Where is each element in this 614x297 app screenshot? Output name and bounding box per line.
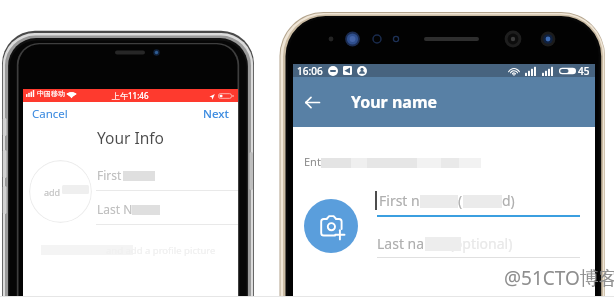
staticText: Your name [351,91,438,113]
button[interactable]: Next [194,103,238,123]
staticText: First n [379,191,420,210]
button[interactable]: Add photo [29,160,92,223]
button[interactable]: Cancel [23,103,77,123]
staticText: 16:06 [297,64,323,77]
staticText: d) [502,191,515,210]
button[interactable]: Back [297,87,327,117]
staticText: Last na [377,234,425,253]
staticText: First [97,167,122,183]
staticText: and add a profile picture [106,244,216,256]
staticText: @51CTO博客 [504,265,614,291]
staticText: Next [203,106,229,120]
staticText: 中国移动 [37,89,65,98]
staticText: 45 [578,64,590,77]
staticText: me (optional) [425,234,513,253]
staticText: Your Info [97,127,164,147]
staticText: ( [458,191,463,210]
staticText: Last N [97,201,133,217]
staticText: 上午11:46 [112,90,149,101]
staticText: add [44,186,61,198]
staticText: Cancel [32,106,68,120]
button[interactable]: Add photo [304,199,358,253]
staticText: Ent [304,154,321,169]
